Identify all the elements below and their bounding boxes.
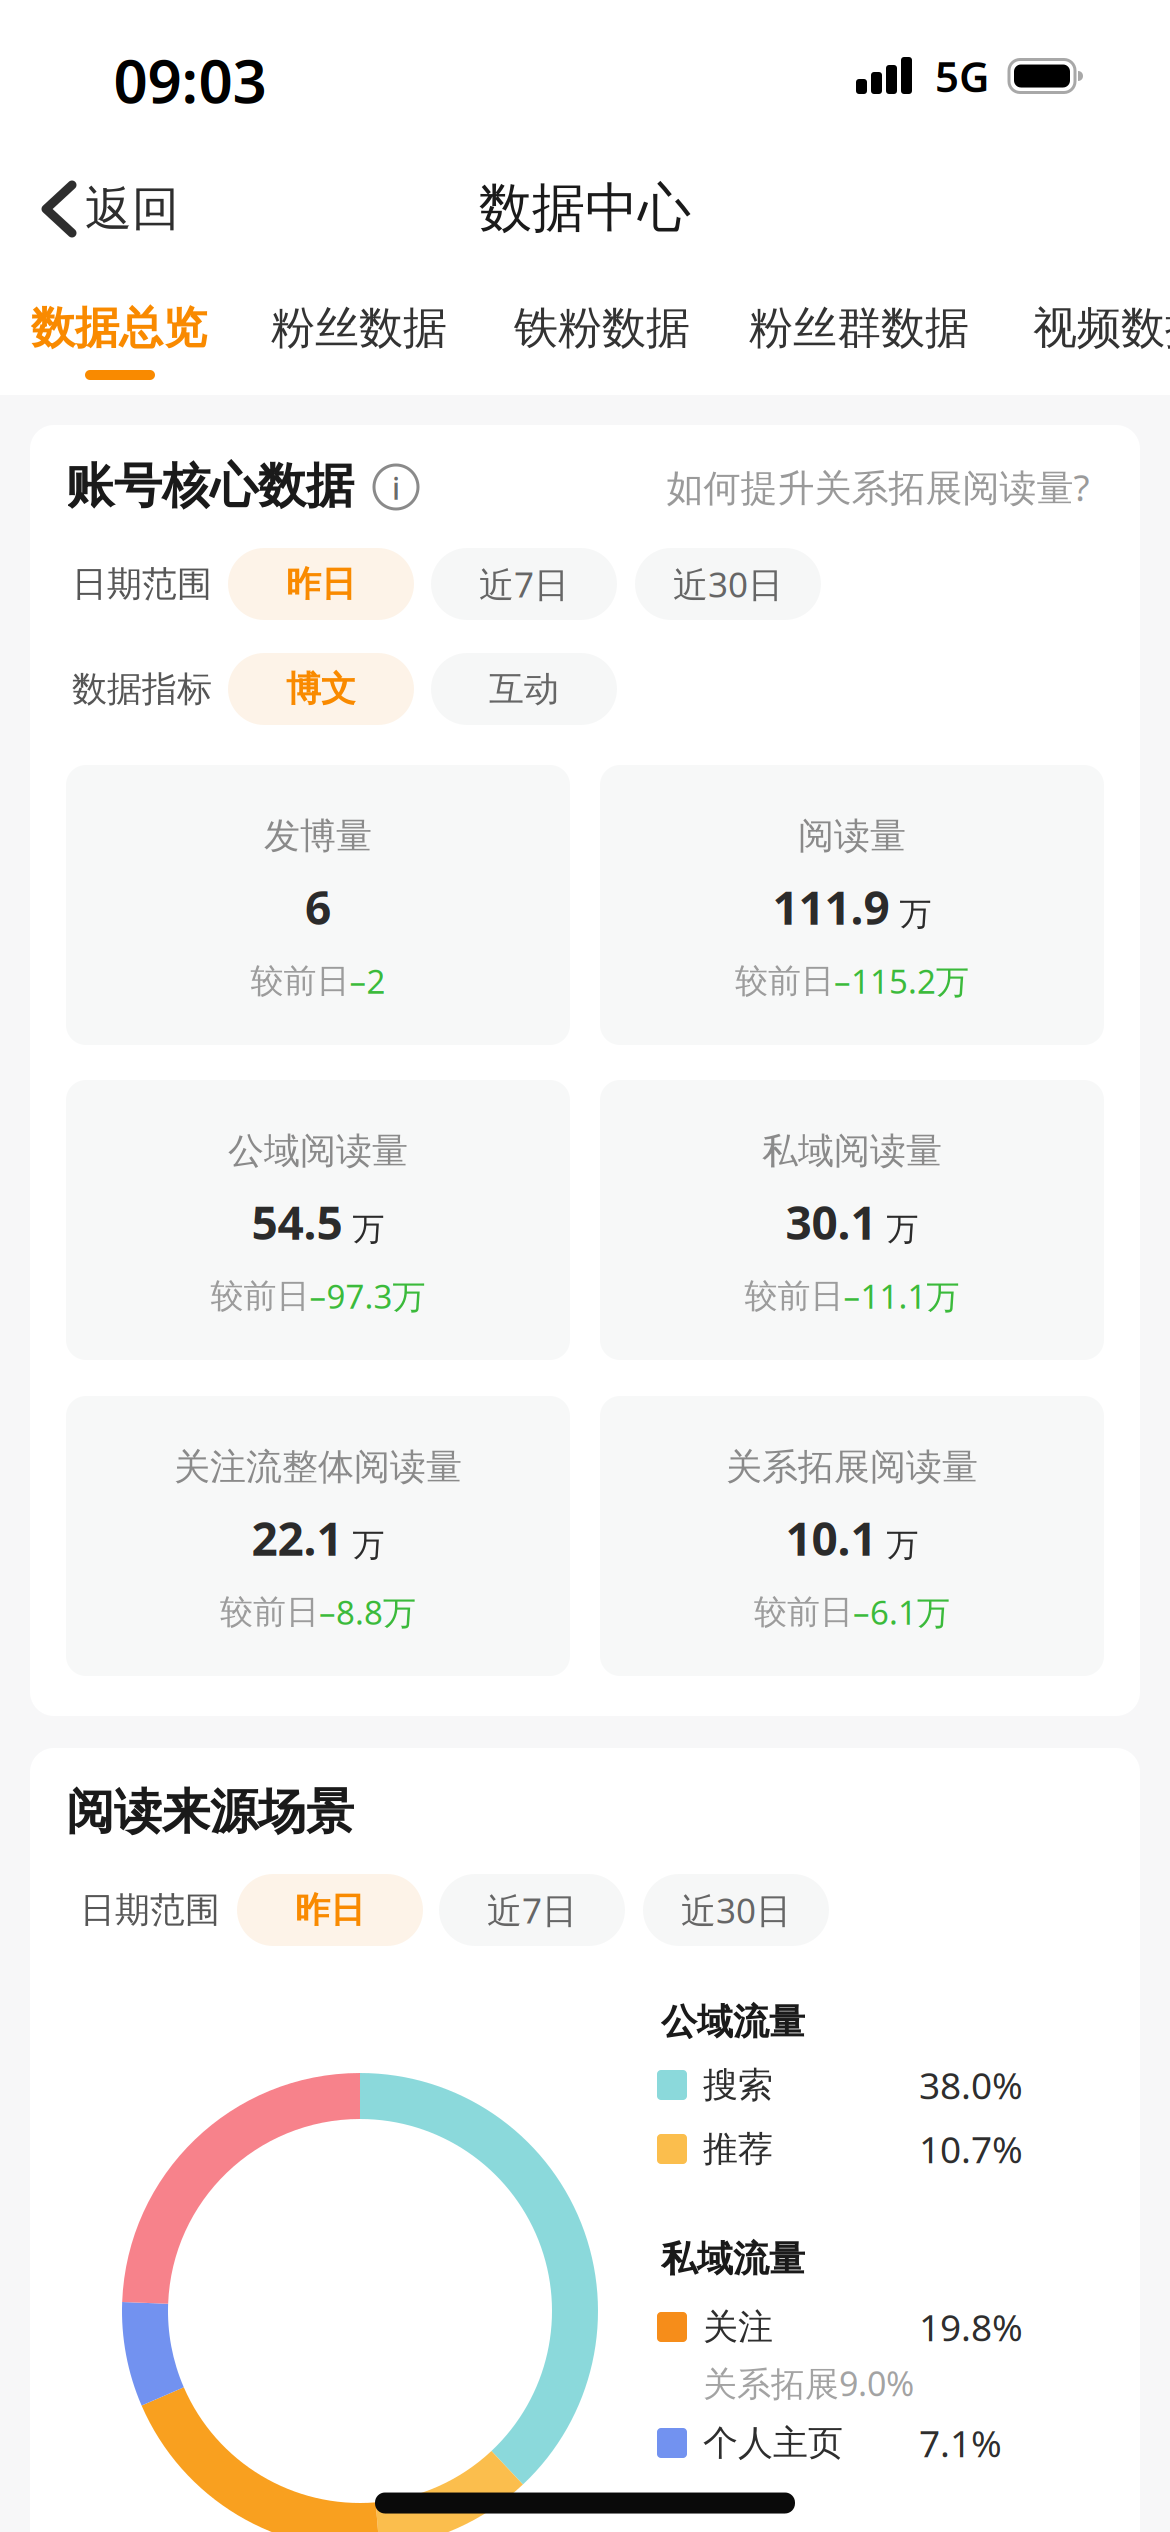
- staticText: 38.0%: [919, 2060, 1023, 2110]
- staticText: 私域流量: [661, 2236, 805, 2282]
- staticText: 粉丝数据: [271, 300, 447, 356]
- button[interactable]: 如何提升关系拓展阅读量?: [666, 462, 1089, 512]
- staticText: 较前日: [210, 1275, 309, 1317]
- staticText: 近30日: [673, 560, 783, 608]
- button[interactable]: 铁粉数据: [514, 290, 690, 366]
- staticText: 10.1: [785, 1507, 876, 1569]
- staticText: 较前日: [754, 1591, 853, 1633]
- staticText: 阅读量: [798, 813, 906, 859]
- staticText: 数据指标: [72, 667, 212, 711]
- staticText: 6: [305, 876, 331, 938]
- staticText: 关注流整体阅读量: [174, 1444, 462, 1490]
- staticText: –97.3万: [309, 1273, 425, 1318]
- staticText: 返回: [85, 179, 179, 239]
- button[interactable]: 说明: [374, 465, 418, 509]
- staticText: 较前日: [735, 960, 834, 1002]
- staticText: 7.1%: [919, 2418, 1002, 2468]
- staticText: –8.8万: [319, 1589, 416, 1634]
- staticText: 阅读来源场景: [66, 1782, 354, 1842]
- staticText: 如何提升关系拓展阅读量?: [666, 462, 1089, 512]
- staticText: 较前日: [220, 1591, 319, 1633]
- staticText: 关系拓展9.0%: [703, 2360, 914, 2406]
- staticText: 万: [899, 894, 931, 934]
- staticText: 铁粉数据: [514, 300, 690, 356]
- staticText: 公域流量: [661, 1999, 805, 2045]
- staticText: 22.1: [251, 1507, 342, 1569]
- button[interactable]: 返回: [10, 164, 190, 254]
- button[interactable]: 昨日: [228, 548, 414, 620]
- staticText: 搜索: [703, 2063, 773, 2107]
- staticText: 昨日: [295, 1888, 365, 1932]
- staticText: 互动: [489, 667, 559, 711]
- staticText: 昨日: [286, 562, 356, 606]
- button[interactable]: 互动: [431, 653, 617, 725]
- staticText: 较前日: [250, 960, 349, 1002]
- button[interactable]: 近30日: [643, 1874, 829, 1946]
- button[interactable]: 粉丝群数据: [749, 290, 969, 366]
- staticText: 视频数据: [1033, 300, 1170, 356]
- staticText: –115.2万: [834, 958, 969, 1003]
- button[interactable]: 近7日: [431, 548, 617, 620]
- staticText: 54.5: [251, 1191, 342, 1253]
- staticText: –2: [349, 958, 385, 1003]
- staticText: 万: [352, 1209, 384, 1249]
- staticText: 关注: [703, 2305, 773, 2349]
- staticText: 30.1: [785, 1191, 876, 1253]
- staticText: 日期范围: [80, 1888, 220, 1932]
- button[interactable]: 粉丝数据: [271, 290, 447, 366]
- button[interactable]: 博文: [228, 653, 414, 725]
- staticText: –6.1万: [853, 1589, 950, 1634]
- staticText: 日期范围: [72, 562, 212, 606]
- staticText: 万: [886, 1209, 918, 1249]
- staticText: 10.7%: [919, 2124, 1023, 2174]
- staticText: 近30日: [681, 1886, 791, 1934]
- staticText: 较前日: [744, 1275, 843, 1317]
- staticText: 私域阅读量: [762, 1128, 942, 1174]
- staticText: 万: [886, 1525, 918, 1565]
- staticText: 数据总览: [31, 300, 207, 356]
- button[interactable]: 近7日: [439, 1874, 625, 1946]
- staticText: 19.8%: [919, 2302, 1023, 2352]
- staticText: 5G: [935, 47, 989, 105]
- staticText: 博文: [286, 667, 356, 711]
- staticText: 账号核心数据: [66, 456, 354, 516]
- staticText: 粉丝群数据: [749, 300, 969, 356]
- staticText: 推荐: [703, 2127, 773, 2171]
- staticText: 万: [352, 1525, 384, 1565]
- staticText: 关系拓展阅读量: [726, 1444, 978, 1490]
- staticText: 个人主页: [703, 2421, 843, 2465]
- staticText: 近7日: [487, 1886, 577, 1934]
- button[interactable]: 数据总览: [31, 290, 207, 366]
- staticText: 111.9: [772, 876, 889, 938]
- button[interactable]: 近30日: [635, 548, 821, 620]
- staticText: 09:03: [113, 39, 266, 121]
- button[interactable]: 视频数据: [1033, 290, 1170, 366]
- staticText: 近7日: [479, 560, 569, 608]
- staticText: –11.1万: [843, 1273, 959, 1318]
- staticText: 发博量: [264, 813, 372, 859]
- button[interactable]: 昨日: [237, 1874, 423, 1946]
- staticText: 数据中心: [479, 175, 691, 241]
- staticText: i: [392, 468, 400, 508]
- staticText: 公域阅读量: [228, 1128, 408, 1174]
